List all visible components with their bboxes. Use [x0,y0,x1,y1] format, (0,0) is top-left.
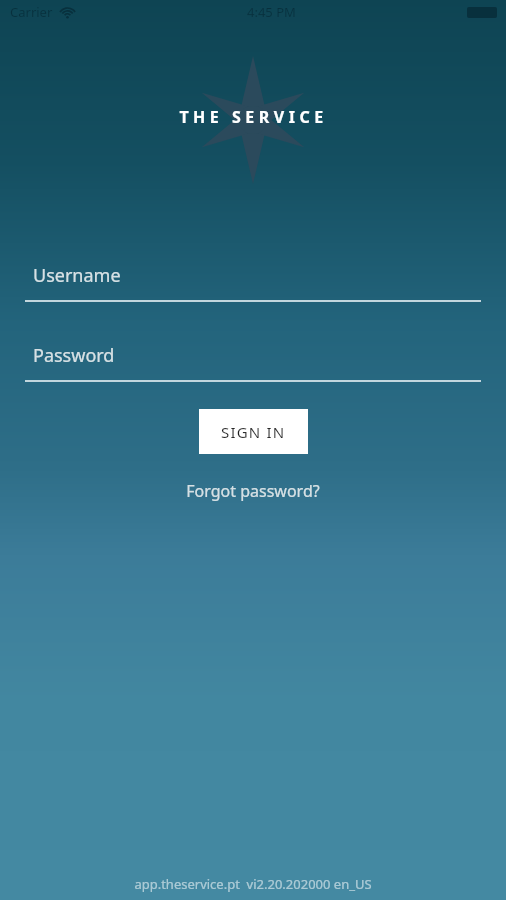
staticText: SIGN IN [221,422,286,442]
button[interactable]: SIGN IN [199,409,308,454]
staticText: Carrier [10,3,53,21]
staticText: Forgot password? [186,480,320,502]
button[interactable]: Password [25,338,481,382]
staticText: Password [33,343,115,368]
button[interactable]: Forgot password? [176,476,330,506]
button[interactable]: Username [25,258,481,302]
staticText: app.theservice.pt vi2.20.202000 en_US [134,875,372,893]
staticText: Username [33,263,121,288]
staticText: 4:45 PM [247,3,296,21]
staticText: THE SERVICE [179,106,328,128]
